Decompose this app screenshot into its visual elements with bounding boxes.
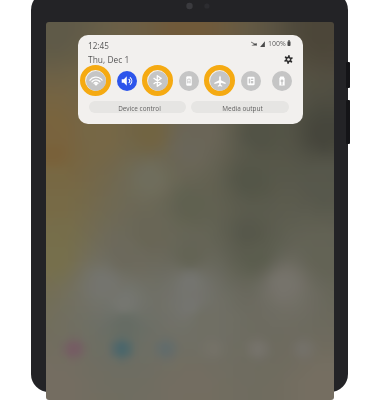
button[interactable]: Sound xyxy=(111,65,142,96)
button[interactable]: Settings xyxy=(281,52,295,66)
button[interactable]: Bluetooth xyxy=(142,65,173,96)
button[interactable]: Wi-Fi xyxy=(80,65,111,96)
button[interactable]: Auto rotate xyxy=(173,65,204,96)
button[interactable]: Media output xyxy=(191,101,289,113)
staticText: Media output xyxy=(222,104,263,113)
button[interactable]: Airplane mode xyxy=(204,65,235,96)
staticText: Device control xyxy=(118,104,161,113)
staticText: 100% xyxy=(268,39,286,49)
staticText: Thu, Dec 1 xyxy=(88,54,130,65)
staticText: 12:45 xyxy=(88,40,109,51)
button[interactable]: Screen record xyxy=(235,65,266,96)
button[interactable]: Device control xyxy=(89,101,186,113)
button[interactable]: Flashlight xyxy=(266,65,297,96)
